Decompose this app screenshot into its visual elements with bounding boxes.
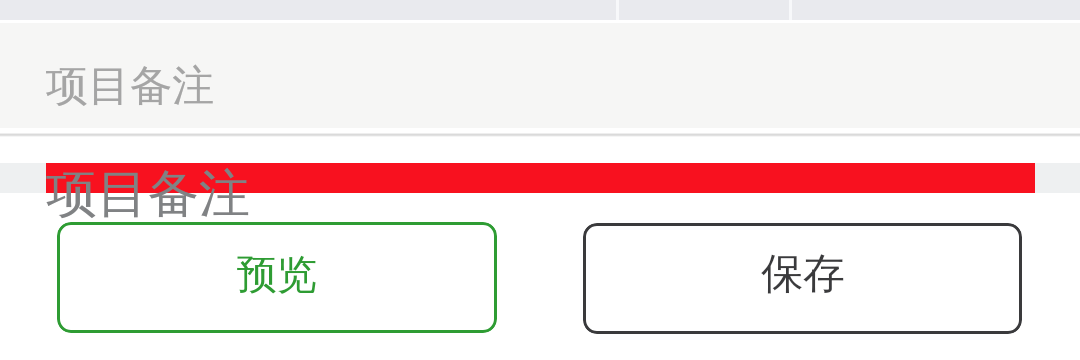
staticText: 项目备注 — [46, 60, 214, 113]
staticText: 项目备注 — [46, 162, 250, 226]
button[interactable]: 项目备注 — [0, 23, 1080, 128]
staticText: 保存 — [761, 248, 845, 301]
button[interactable]: 保存 — [583, 223, 1022, 334]
staticText: 预览 — [237, 249, 317, 299]
button[interactable]: 预览 — [57, 222, 497, 333]
